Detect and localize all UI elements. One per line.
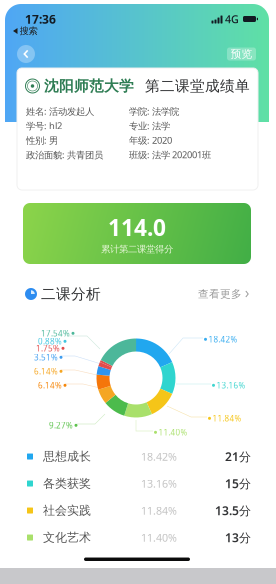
- staticText: 6.14%: [38, 380, 62, 391]
- staticText: 年级: 2020: [129, 134, 172, 146]
- staticText: 21分: [225, 448, 251, 464]
- staticText: 11.40%: [158, 427, 187, 438]
- button[interactable]: 查看更多: [198, 287, 249, 300]
- staticText: 学号: hl2: [26, 120, 62, 132]
- button[interactable]: 返回: [15, 44, 37, 64]
- staticText: 11.84%: [141, 503, 177, 518]
- staticText: 13.5分: [215, 502, 251, 518]
- staticText: 二课分析: [41, 285, 101, 303]
- staticText: 性别: 男: [26, 134, 58, 146]
- staticText: 114.0: [108, 212, 166, 242]
- staticText: 17.54%: [41, 328, 70, 339]
- staticText: 13.16%: [216, 380, 245, 391]
- staticText: 第二课堂成绩单: [145, 77, 250, 95]
- staticText: 各类获奖: [43, 476, 91, 491]
- staticText: 13.16%: [141, 476, 177, 491]
- staticText: 18.42%: [141, 449, 177, 464]
- staticText: 思想成长: [43, 449, 91, 464]
- staticText: 4G: [225, 12, 239, 26]
- staticText: 搜索: [19, 25, 37, 37]
- staticText: 15分: [225, 475, 251, 491]
- staticText: 文化艺术: [43, 530, 91, 545]
- staticText: 沈阳师范大学: [44, 77, 134, 95]
- button[interactable]: 预览: [227, 47, 256, 60]
- staticText: 17:36: [25, 11, 56, 27]
- staticText: 6.14%: [34, 366, 58, 377]
- staticText: 查看更多: [198, 287, 242, 300]
- staticText: 政治面貌: 共青团员: [26, 149, 103, 161]
- staticText: 累计第二课堂得分: [101, 243, 173, 255]
- staticText: 专业: 法学: [129, 120, 170, 132]
- staticText: 9.27%: [49, 420, 73, 431]
- staticText: 13分: [225, 529, 251, 545]
- staticText: 18.42%: [208, 334, 237, 345]
- staticText: 社会实践: [43, 503, 91, 518]
- staticText: 1.75%: [36, 343, 60, 354]
- staticText: 班级: 法学 202001班: [129, 149, 211, 161]
- staticText: 预览: [230, 47, 252, 60]
- staticText: 3.51%: [34, 352, 58, 363]
- staticText: 学院: 法学院: [129, 105, 179, 117]
- staticText: 0.88%: [38, 336, 62, 347]
- staticText: 11.84%: [212, 413, 241, 424]
- staticText: 姓名: 活动发起人: [26, 105, 94, 117]
- staticText: 11.40%: [141, 530, 177, 545]
